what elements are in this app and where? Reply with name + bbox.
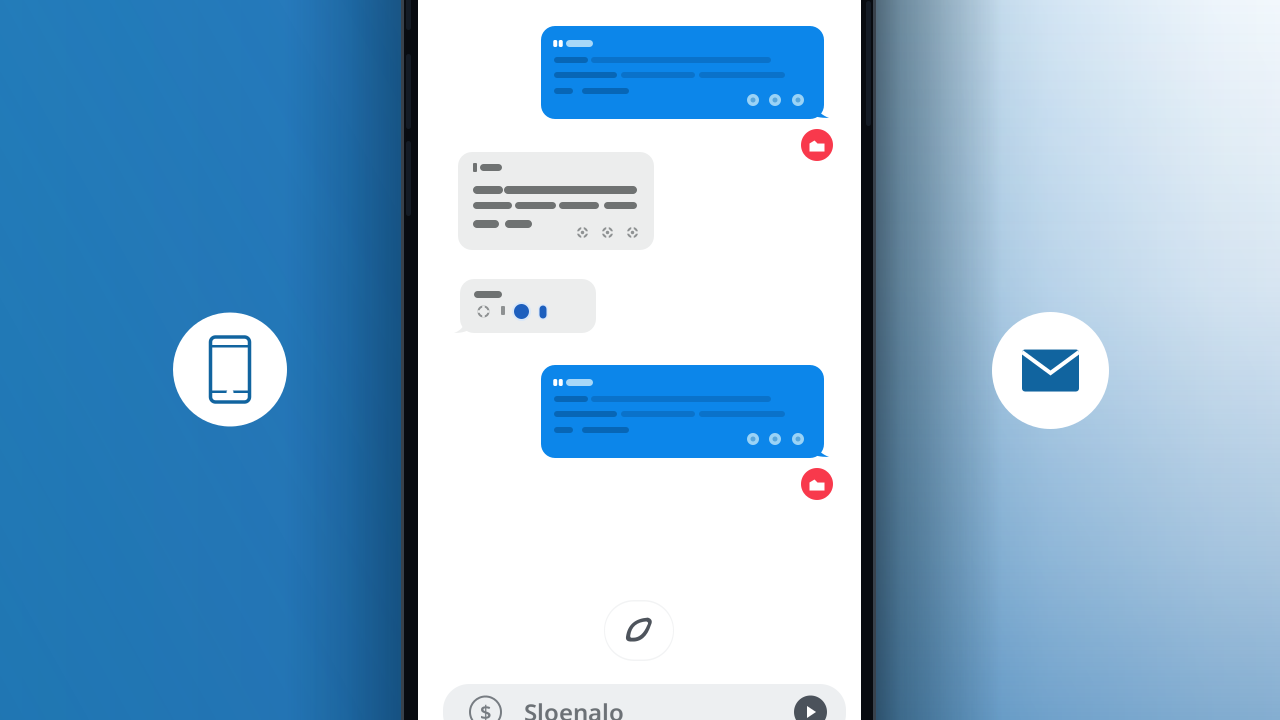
button[interactable]: Email bbox=[581, 301, 698, 418]
button[interactable]: Mobile app bbox=[583, 302, 697, 417]
staticText: $ bbox=[480, 699, 491, 720]
staticText: Sloenalo bbox=[524, 696, 624, 720]
button[interactable]: Alert bbox=[623, 344, 655, 376]
button[interactable]: Add sticker bbox=[604, 329, 674, 390]
button[interactable]: Alert bbox=[623, 344, 655, 376]
